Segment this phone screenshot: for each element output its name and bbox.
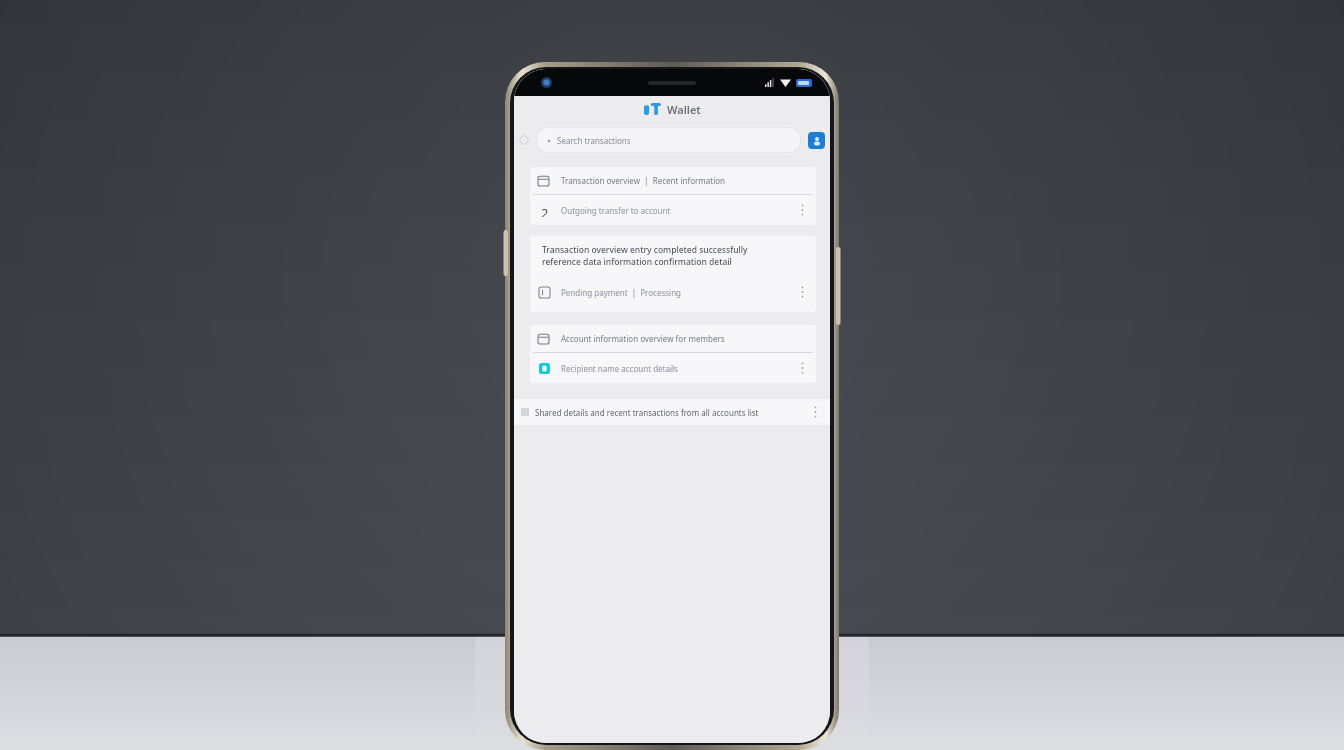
staticText: Transaction overview entry completed suc…: [542, 244, 748, 256]
button[interactable]: More options: [795, 357, 809, 379]
staticText: Transaction overview | Recent informatio…: [561, 175, 726, 186]
staticText: Wallet: [667, 102, 701, 117]
button[interactable]: Profile: [808, 132, 825, 149]
button[interactable]: More options: [795, 281, 809, 303]
staticText: Pending payment | Processing: [561, 287, 795, 298]
staticText: Recipient name account details: [561, 363, 795, 374]
staticText: 2: [541, 204, 549, 217]
staticText: Search transactions: [557, 135, 631, 146]
button[interactable]: Recipient name account details: [530, 353, 816, 383]
button[interactable]: Account information overview for members: [530, 325, 816, 352]
button[interactable]: Shared details and recent transactions f…: [514, 399, 830, 425]
button[interactable]: Transaction overview | Recent informatio…: [530, 167, 816, 194]
button[interactable]: Pending payment | Processing: [530, 277, 816, 307]
staticText: Account information overview for members: [561, 333, 725, 344]
staticText: reference data information confirmation …: [542, 256, 732, 268]
button[interactable]: More options: [808, 401, 822, 423]
button[interactable]: 2: [530, 195, 816, 225]
staticText: Outgoing transfer to account: [561, 205, 795, 216]
button[interactable]: Search transactions: [536, 127, 801, 153]
staticText: Shared details and recent transactions f…: [535, 407, 808, 418]
button[interactable]: More options: [795, 199, 809, 221]
